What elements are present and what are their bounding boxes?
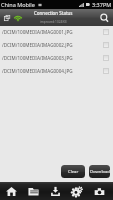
button[interactable]: Search — [96, 9, 113, 26]
staticText: /DCIM/100MEDIA/IMAG0003.JPG — [2, 55, 73, 61]
staticText: Connection Status — [34, 10, 73, 16]
button[interactable]: Downloads — [44, 182, 66, 200]
button[interactable]: Settings — [66, 182, 88, 200]
staticText: /DCIM/100MEDIA/IMAG0001.JPG — [2, 29, 73, 35]
staticText: 3:37PM — [92, 1, 112, 8]
staticText: China Mobile — [1, 1, 35, 8]
staticText: Download — [90, 169, 110, 175]
button[interactable]: WiFi — [13, 13, 23, 23]
button[interactable]: /DCIM/100MEDIA/IMAG0004.JPG — [0, 65, 113, 78]
button[interactable]: Download — [89, 165, 110, 178]
button[interactable]: Device — [2, 13, 11, 22]
button[interactable]: Camera — [88, 182, 110, 200]
staticText: improved:1024KB — [40, 20, 67, 24]
staticText: /DCIM/100MEDIA/IMAG0002.JPG — [2, 42, 73, 48]
button[interactable]: /DCIM/100MEDIA/IMAG0003.JPG — [0, 52, 113, 65]
staticText: /DCIM/100MEDIA/IMAG0004.JPG — [2, 68, 73, 74]
staticText: Clear — [68, 169, 79, 175]
button[interactable]: /DCIM/100MEDIA/IMAG0002.JPG — [0, 39, 113, 52]
button[interactable]: Clear — [61, 165, 85, 178]
button[interactable]: /DCIM/100MEDIA/IMAG0001.JPG — [0, 26, 113, 39]
button[interactable]: Files — [22, 182, 44, 200]
button[interactable]: Home — [1, 182, 22, 200]
